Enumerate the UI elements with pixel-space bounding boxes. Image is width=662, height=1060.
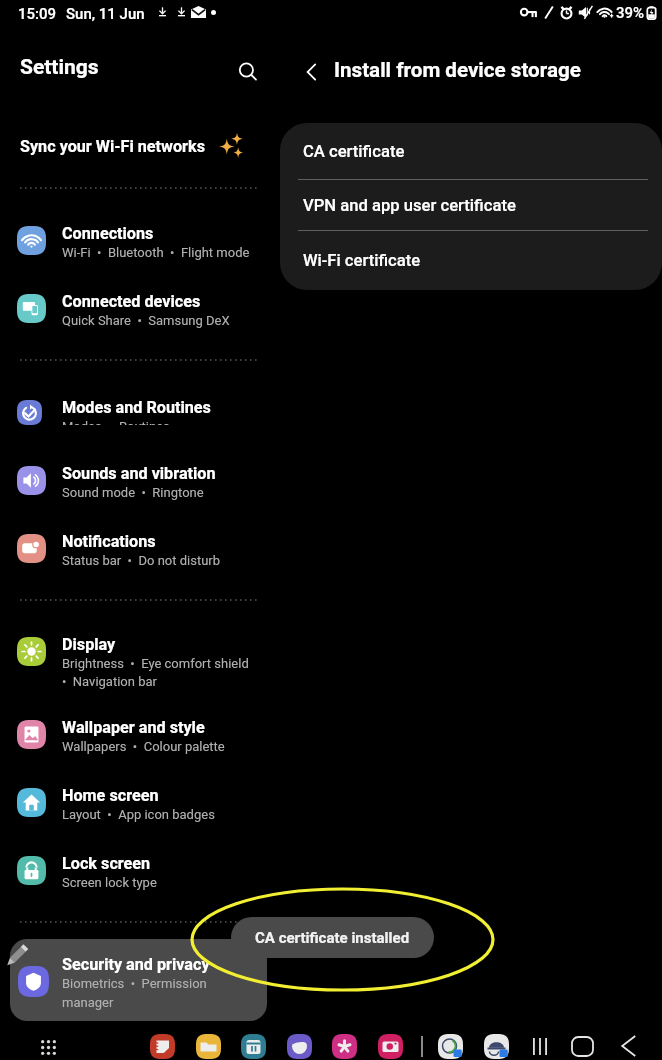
button[interactable]: VPN and app user certificate <box>280 180 662 230</box>
staticText: Lock screen <box>62 854 151 873</box>
button[interactable]: Connections <box>0 222 270 274</box>
staticText: 15:09 <box>18 5 57 23</box>
button[interactable]: Display <box>0 633 270 697</box>
staticText: Connected devices <box>62 292 201 311</box>
button[interactable]: Recent app <box>438 1034 463 1059</box>
staticText: 39% <box>616 4 645 22</box>
staticText: Connections <box>62 224 154 243</box>
staticText: Quick Share • Samsung DeX <box>62 313 230 328</box>
button[interactable]: net <box>287 1034 312 1059</box>
button[interactable]: Search <box>232 56 264 88</box>
button[interactable]: Sync your Wi-Fi networks <box>0 125 270 167</box>
staticText: Wi-Fi certificate <box>303 251 421 270</box>
button[interactable]: Home screen <box>0 784 270 836</box>
staticText: Screen lock type <box>62 875 157 890</box>
button[interactable]: Modes and Routines <box>0 396 270 425</box>
button[interactable]: Recent app <box>484 1034 509 1059</box>
staticText: Home screen <box>62 786 159 805</box>
button[interactable]: Notifications <box>0 530 270 582</box>
staticText: Modes • Routines <box>62 419 170 425</box>
button[interactable]: cam <box>378 1034 403 1059</box>
button[interactable]: Recents <box>525 1031 555 1060</box>
staticText: Biometrics • Permission manager <box>62 976 207 1010</box>
button[interactable]: notes <box>150 1034 175 1059</box>
staticText: Status bar • Do not disturb <box>62 553 221 568</box>
staticText: Notifications <box>62 532 156 551</box>
staticText: Install from device storage <box>334 58 581 82</box>
staticText: Modes and Routines <box>62 398 211 417</box>
staticText: Security and privacy <box>62 955 210 974</box>
button[interactable]: Back <box>613 1031 643 1060</box>
button[interactable]: Connected devices <box>0 290 270 342</box>
staticText: Sound mode • Ringtone <box>62 485 204 500</box>
button[interactable]: CA certificate <box>280 123 662 179</box>
staticText: Wallpapers • Colour palette <box>62 739 225 754</box>
staticText: CA certificate <box>303 142 405 161</box>
button[interactable]: Back <box>296 56 328 88</box>
button[interactable]: Sounds and vibration <box>0 462 270 514</box>
button[interactable]: folder <box>196 1034 221 1059</box>
staticText: Layout • App icon badges <box>62 807 215 822</box>
button[interactable]: Apps <box>34 1033 62 1060</box>
staticText: Sync your Wi-Fi networks <box>20 137 205 156</box>
staticText: Wi-Fi • Bluetooth • Flight mode <box>62 245 250 260</box>
staticText: CA certificate installed <box>255 929 410 947</box>
button[interactable]: Wi-Fi certificate <box>280 231 662 290</box>
button[interactable]: Home <box>567 1031 597 1060</box>
staticText: Brightness • Eye comfort shield • Naviga… <box>62 656 249 689</box>
button[interactable]: Lock screen <box>0 852 270 904</box>
button[interactable] <box>10 939 267 1021</box>
staticText: Sounds and vibration <box>62 464 216 483</box>
staticText: Sun, 11 Jun <box>66 5 145 23</box>
button[interactable]: cal <box>241 1034 266 1059</box>
staticText: Wallpaper and style <box>62 718 205 737</box>
button[interactable]: Wallpaper and style <box>0 716 270 768</box>
staticText: VPN and app user certificate <box>303 196 516 215</box>
staticText: Display <box>62 635 116 654</box>
button[interactable]: store <box>332 1034 357 1059</box>
staticText: Settings <box>20 55 99 80</box>
